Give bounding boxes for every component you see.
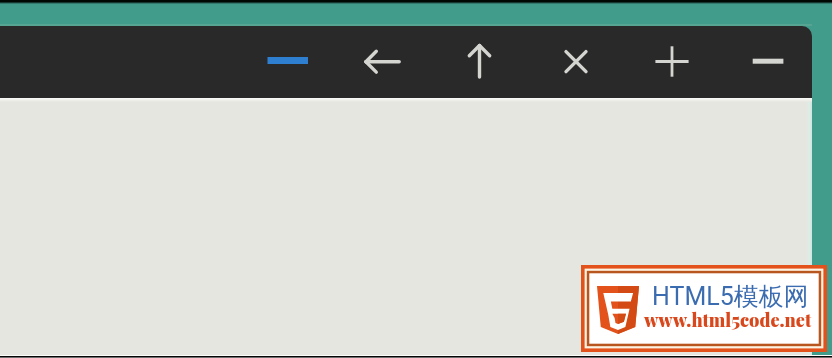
- button[interactable]: Add: [650, 40, 694, 84]
- button[interactable]: Back: [356, 40, 408, 84]
- button[interactable]: Close: [554, 40, 598, 84]
- button[interactable]: Remove: [746, 40, 790, 84]
- button[interactable]: Menu: [256, 44, 320, 78]
- staticText: www.html5code.net: [644, 308, 812, 332]
- button[interactable]: Up: [458, 40, 502, 84]
- staticText: HTML5模板网: [652, 281, 809, 312]
